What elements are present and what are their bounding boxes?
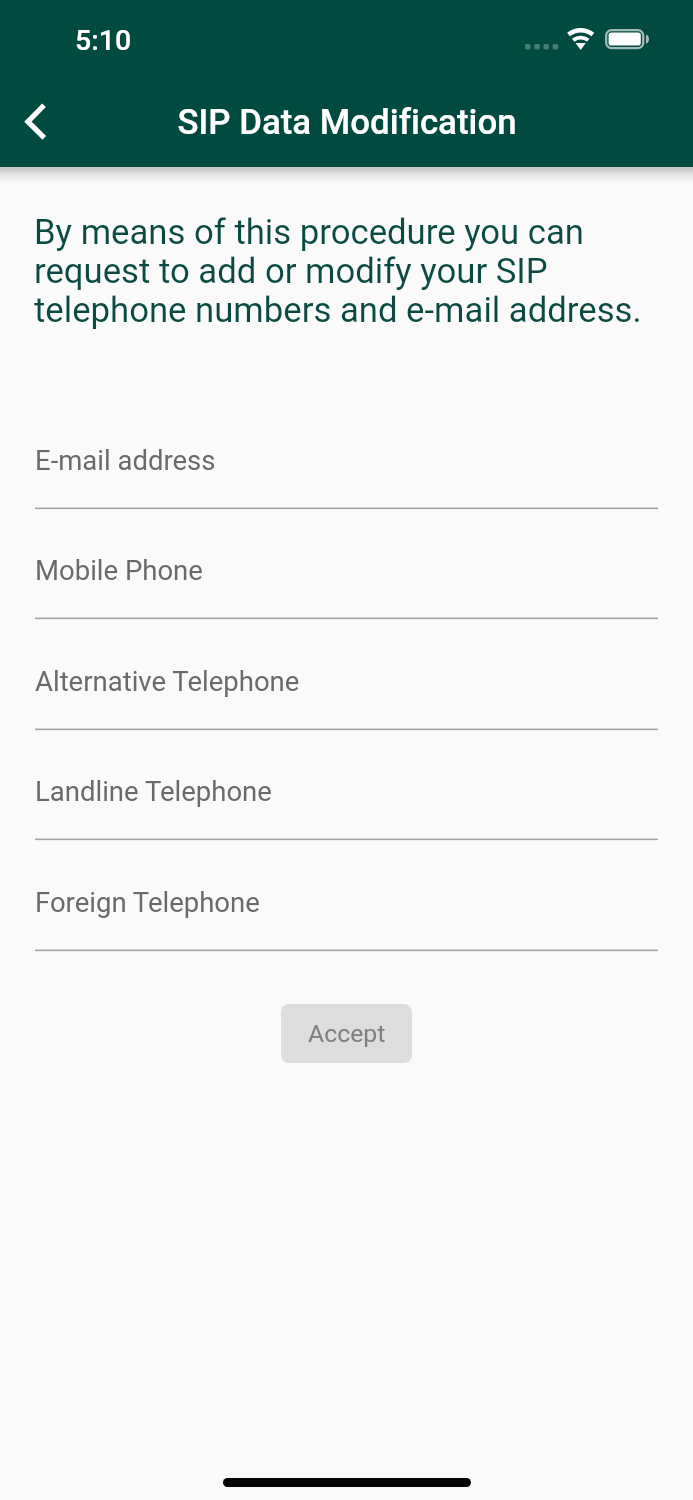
staticText: 5:10 bbox=[75, 24, 132, 57]
staticText: Accept bbox=[308, 1019, 386, 1048]
button[interactable]: Foreign Telephone bbox=[35, 886, 658, 952]
staticText: SIP Data Modification bbox=[177, 102, 517, 143]
button[interactable]: Back bbox=[0, 78, 89, 167]
staticText: E-mail address bbox=[35, 444, 216, 476]
staticText: By means of this procedure you can reque… bbox=[34, 212, 644, 330]
staticText: Mobile Phone bbox=[35, 554, 203, 586]
button[interactable]: Landline Telephone bbox=[35, 775, 658, 841]
button[interactable]: E-mail address bbox=[35, 444, 658, 510]
staticText: Landline Telephone bbox=[35, 775, 272, 807]
button[interactable]: Alternative Telephone bbox=[35, 665, 658, 731]
button[interactable]: Accept bbox=[281, 1004, 412, 1063]
staticText: Foreign Telephone bbox=[35, 886, 260, 918]
button[interactable]: Mobile Phone bbox=[35, 554, 658, 620]
staticText: Alternative Telephone bbox=[35, 665, 300, 697]
